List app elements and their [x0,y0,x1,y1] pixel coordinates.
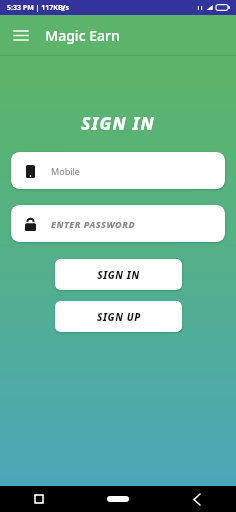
staticText: SIGN UP [97,310,141,324]
staticText: ENTER PASSWORD [51,218,135,230]
button[interactable]: Home [78,486,157,512]
button[interactable]: SIGN IN [55,259,182,290]
staticText: Mobile [51,165,80,177]
staticText: SIGN IN [97,268,140,282]
button[interactable]: Back [157,486,236,512]
staticText: Magic Earn [45,26,120,45]
staticText: SIGN IN [81,112,155,135]
button[interactable]: Mobile [11,152,225,189]
button[interactable]: SIGN UP [55,301,182,332]
staticText: 5:33 PM | 117KB/s [7,3,69,13]
button[interactable]: Open navigation menu [5,19,37,51]
button[interactable]: Recent apps [0,486,78,512]
button[interactable]: ENTER PASSWORD [11,205,225,242]
